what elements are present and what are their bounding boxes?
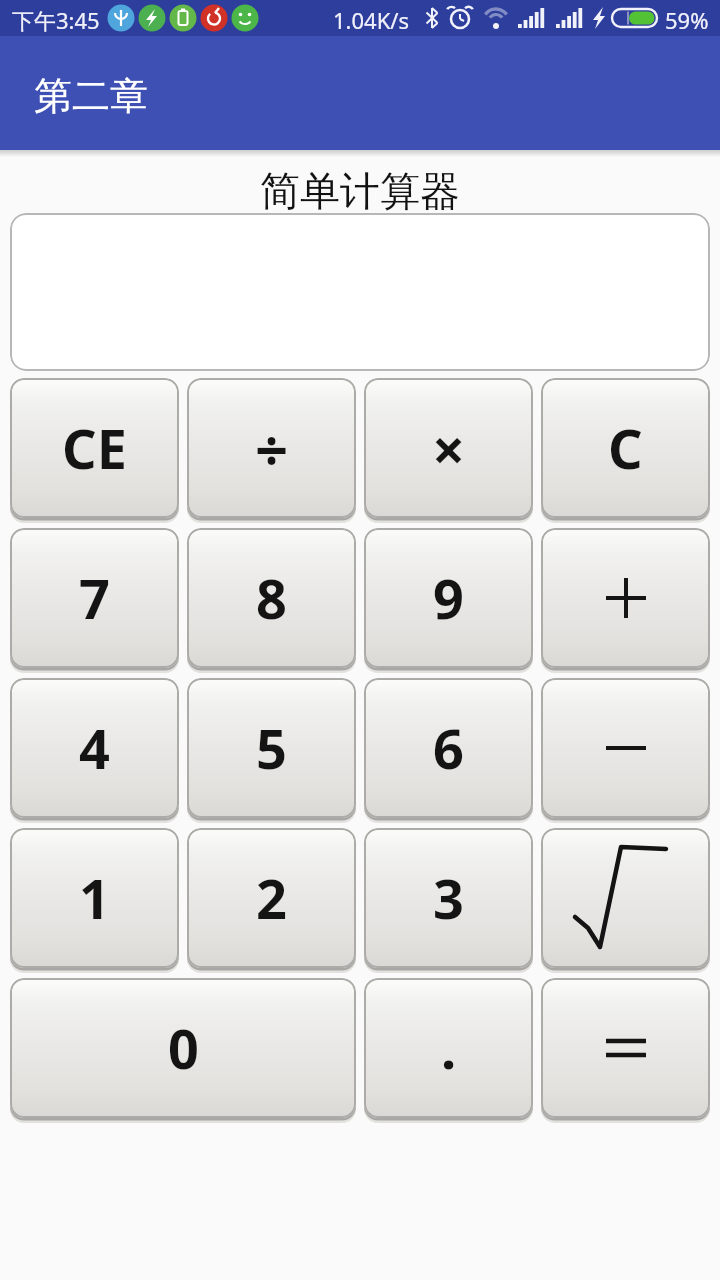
button[interactable]: 6: [364, 678, 533, 818]
button[interactable]: [541, 528, 710, 668]
staticText: ÷: [255, 409, 289, 488]
button[interactable]: [541, 828, 710, 968]
staticText: 7: [79, 561, 110, 635]
staticText: ×: [432, 409, 466, 488]
staticText: 第二章: [34, 72, 148, 120]
button[interactable]: C: [541, 378, 710, 518]
staticText: 8: [256, 561, 287, 635]
staticText: 3: [433, 861, 464, 935]
staticText: 下午3:45: [12, 5, 100, 35]
button[interactable]: 5: [187, 678, 356, 818]
staticText: CE: [62, 411, 127, 485]
staticText: .: [441, 1011, 457, 1085]
staticText: 0: [168, 1011, 199, 1085]
button[interactable]: [541, 678, 710, 818]
staticText: 5: [256, 711, 287, 785]
staticText: 1.04K/s: [333, 5, 409, 35]
staticText: 9: [433, 561, 464, 635]
button[interactable]: 9: [364, 528, 533, 668]
staticText: 59%: [665, 5, 709, 35]
staticText: 6: [433, 711, 464, 785]
staticText: 1: [79, 861, 110, 935]
button[interactable]: 1: [10, 828, 179, 968]
button[interactable]: 3: [364, 828, 533, 968]
staticText: C: [608, 411, 643, 485]
staticText: 4: [79, 711, 110, 785]
button[interactable]: [541, 978, 710, 1118]
button[interactable]: ×: [364, 378, 533, 518]
staticText: 简单计算器: [260, 166, 460, 216]
button[interactable]: 0: [10, 978, 356, 1118]
button[interactable]: .: [364, 978, 533, 1118]
staticText: 2: [256, 861, 287, 935]
button[interactable]: 7: [10, 528, 179, 668]
button[interactable]: 4: [10, 678, 179, 818]
button[interactable]: 2: [187, 828, 356, 968]
button[interactable]: CE: [10, 378, 179, 518]
button[interactable]: 8: [187, 528, 356, 668]
button[interactable]: ÷: [187, 378, 356, 518]
